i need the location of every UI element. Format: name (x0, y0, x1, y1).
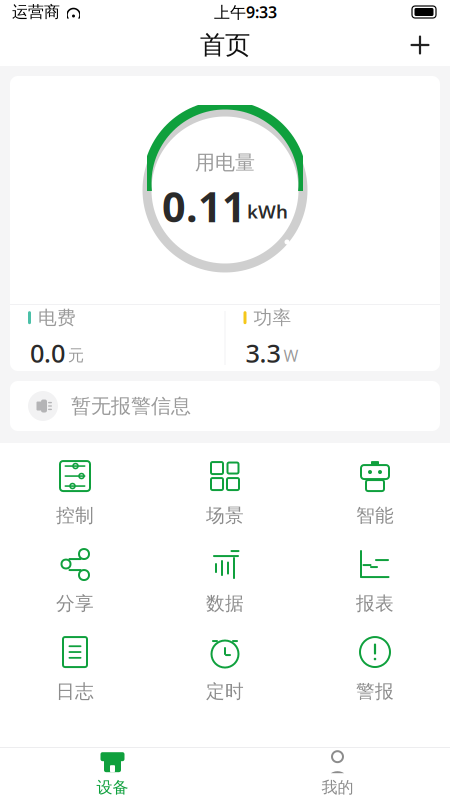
button[interactable]: 报表 (300, 537, 450, 625)
staticText: 智能 (356, 504, 394, 527)
button[interactable]: 数据 (150, 537, 300, 625)
button[interactable]: 添加 (400, 25, 440, 65)
staticText: 我的 (321, 778, 353, 797)
staticText: 功率 (253, 306, 291, 329)
staticText: 警报 (356, 680, 394, 703)
button[interactable]: 分享 (0, 537, 150, 625)
button[interactable]: 场景 (150, 449, 300, 537)
staticText: 首页 (200, 29, 250, 60)
staticText: 元 (68, 346, 84, 365)
button[interactable]: 设备 (0, 748, 225, 800)
staticText: 0.11 (162, 179, 246, 234)
staticText: 用电量 (195, 150, 255, 175)
staticText: 定时 (206, 680, 244, 703)
staticText: kWh (247, 199, 288, 224)
button[interactable]: 警报 (300, 625, 450, 713)
button[interactable]: 我的 (225, 748, 450, 800)
button[interactable]: 暂无报警信息 (10, 381, 440, 431)
staticText: 分享 (56, 592, 94, 615)
button[interactable]: 定时 (150, 625, 300, 713)
staticText: 日志 (56, 680, 94, 703)
staticText: 0.0 (30, 336, 65, 370)
staticText: 运营商 (12, 2, 60, 22)
button[interactable]: 控制 (0, 449, 150, 537)
button[interactable]: 日志 (0, 625, 150, 713)
staticText: 暂无报警信息 (71, 394, 191, 418)
staticText: 场景 (206, 504, 244, 527)
button[interactable]: 智能 (300, 449, 450, 537)
staticText: 数据 (206, 592, 244, 615)
staticText: 3.3 (245, 336, 280, 370)
staticText: 控制 (56, 504, 94, 527)
staticText: 电费 (38, 306, 76, 329)
staticText: W (283, 345, 298, 366)
staticText: 上午9:33 (214, 1, 277, 23)
staticText: 设备 (96, 778, 128, 797)
staticText: 报表 (356, 592, 394, 615)
